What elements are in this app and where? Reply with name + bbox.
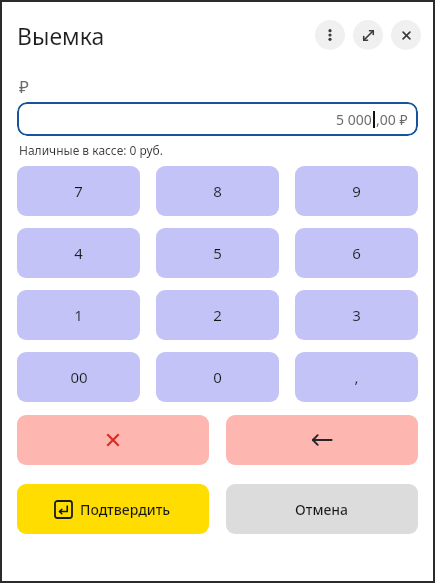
button[interactable]: More options xyxy=(315,20,345,50)
staticText: 6 xyxy=(352,243,361,263)
button[interactable]: 3 xyxy=(295,290,418,340)
staticText: 2 xyxy=(213,305,222,325)
staticText: 3 xyxy=(352,305,361,325)
button[interactable]: 00 xyxy=(17,352,140,402)
button[interactable]: Expand xyxy=(353,20,383,50)
staticText: 00 xyxy=(70,367,88,387)
button[interactable]: 2 xyxy=(156,290,279,340)
staticText: 9 xyxy=(352,181,361,201)
staticText: 4 xyxy=(74,243,83,263)
button[interactable]: 5 xyxy=(156,228,279,278)
button[interactable]: Backspace xyxy=(226,415,418,465)
staticText: 0 xyxy=(213,367,222,387)
staticText: 5 xyxy=(213,243,222,263)
button[interactable]: Close xyxy=(391,20,421,50)
staticText: ₽ xyxy=(19,75,29,98)
button[interactable]: Подтвердить xyxy=(17,484,209,534)
button[interactable]: 1 xyxy=(17,290,140,340)
staticText: Отмена xyxy=(295,500,349,519)
button[interactable]: 4 xyxy=(17,228,140,278)
staticText: 7 xyxy=(74,181,83,201)
button[interactable]: 9 xyxy=(295,166,418,216)
button[interactable]: 8 xyxy=(156,166,279,216)
staticText: 8 xyxy=(213,181,222,201)
staticText: Выемка xyxy=(17,20,105,51)
button[interactable]: Clear xyxy=(17,415,209,465)
staticText: Наличные в кассе: 0 руб. xyxy=(19,142,164,158)
staticText: ,00 ₽ xyxy=(376,110,408,129)
staticText: 5 000 xyxy=(336,110,372,129)
staticText: 1 xyxy=(74,305,83,325)
button[interactable]: 6 xyxy=(295,228,418,278)
button[interactable]: 7 xyxy=(17,166,140,216)
button[interactable]: Отмена xyxy=(226,484,418,534)
button[interactable]: 0 xyxy=(156,352,279,402)
button[interactable]: 5 000 xyxy=(17,102,418,136)
staticText: , xyxy=(354,367,359,387)
button[interactable]: , xyxy=(295,352,418,402)
staticText: Подтвердить xyxy=(80,500,171,519)
